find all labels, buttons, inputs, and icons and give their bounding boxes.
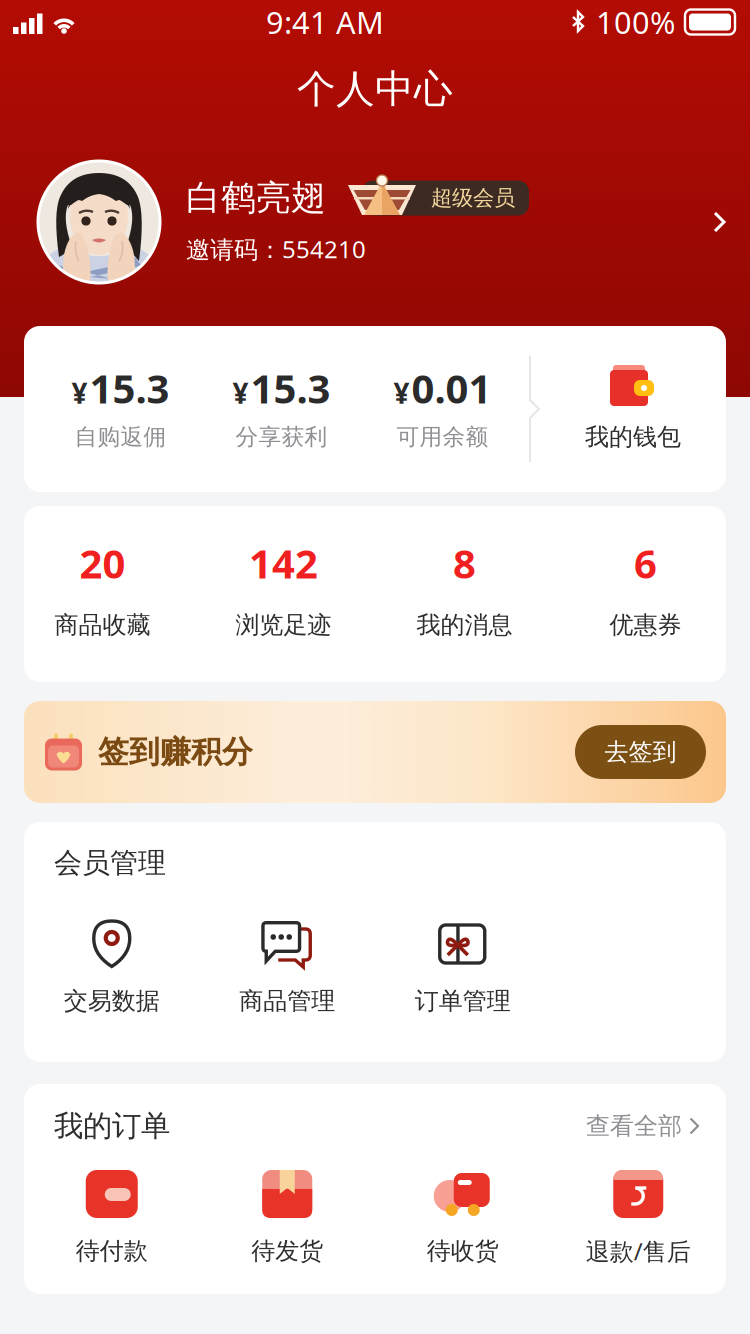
staticText: 0.01 (411, 361, 491, 414)
staticText: 浏览足迹 (235, 610, 331, 640)
staticText: 待发货 (251, 1236, 323, 1266)
staticText: 142 (249, 536, 318, 589)
staticText: 交易数据 (64, 986, 160, 1016)
staticText: 签到赚积分 (98, 733, 253, 771)
button[interactable]: 交易数据 (24, 918, 199, 1018)
staticText: 8 (453, 536, 476, 589)
button[interactable]: 白鹤亮翅 (0, 161, 750, 283)
button[interactable]: 待付款 (24, 1168, 199, 1268)
staticText: 我的消息 (416, 610, 512, 640)
button[interactable]: 商品管理 (199, 918, 375, 1018)
button[interactable]: 142 (193, 540, 374, 640)
button[interactable]: ¥ (362, 365, 523, 453)
staticText: 自购返佣 (74, 423, 166, 451)
staticText: 待收货 (427, 1236, 499, 1266)
staticText: 查看全部 (586, 1111, 682, 1141)
staticText: 100% (596, 2, 675, 42)
staticText: 会员管理 (54, 846, 166, 880)
staticText: 我的钱包 (585, 422, 681, 452)
button[interactable]: ¥ (201, 365, 362, 453)
button[interactable]: 查看全部 (586, 1111, 700, 1141)
staticText: 邀请码：554210 (186, 233, 366, 265)
staticText: 个人中心 (297, 65, 453, 113)
staticText: ¥ (71, 374, 87, 412)
button[interactable]: 订单管理 (375, 918, 550, 1018)
button[interactable]: 我的钱包 (540, 365, 726, 453)
staticText: 6 (634, 536, 657, 589)
staticText: 20 (79, 536, 125, 589)
staticText: 待付款 (76, 1236, 148, 1266)
staticText: 分享获利 (235, 423, 327, 451)
button[interactable]: 待发货 (199, 1168, 375, 1268)
staticText: 我的订单 (54, 1108, 170, 1144)
button[interactable]: 退款/售后 (550, 1168, 726, 1268)
staticText: ¥ (393, 374, 409, 412)
staticText: 15.3 (250, 361, 330, 414)
staticText: 可用余额 (396, 423, 488, 451)
button[interactable]: 6 (555, 540, 736, 640)
staticText: ¥ (232, 374, 248, 412)
staticText: 订单管理 (415, 986, 511, 1016)
button[interactable]: ¥ (40, 365, 201, 453)
staticText: 优惠券 (609, 610, 681, 640)
button[interactable]: 待收货 (375, 1168, 550, 1268)
staticText: 超级会员 (431, 185, 515, 211)
staticText: 退款/售后 (586, 1235, 691, 1267)
button[interactable]: 20 (12, 540, 193, 640)
staticText: 白鹤亮翅 (186, 177, 326, 219)
staticText: 商品收藏 (54, 610, 150, 640)
staticText: 商品管理 (239, 986, 335, 1016)
staticText: 去签到 (604, 737, 676, 767)
staticText: 9:41 AM (266, 2, 384, 42)
button[interactable]: 8 (374, 540, 555, 640)
staticText: 15.3 (89, 361, 169, 414)
button[interactable]: 去签到 (575, 725, 706, 779)
